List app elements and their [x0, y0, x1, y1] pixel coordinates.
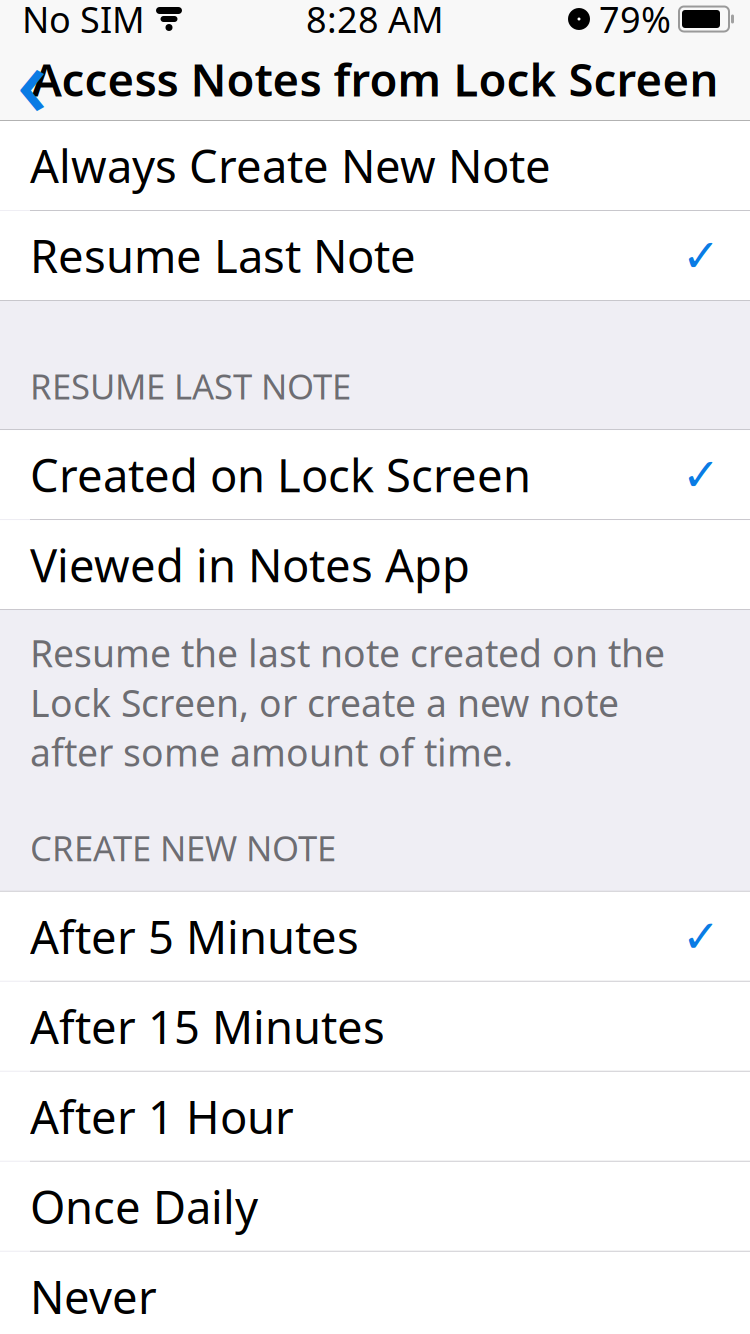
button[interactable]: Always Create New Note — [0, 121, 750, 210]
button[interactable]: Never — [0, 1252, 750, 1334]
staticText: ✓ — [682, 230, 720, 281]
button[interactable]: Back — [0, 37, 64, 120]
staticText: Resume the last note created on the Lock… — [30, 628, 665, 777]
staticText: 8:28 AM — [306, 0, 444, 43]
staticText: Once Daily — [30, 1176, 258, 1236]
button[interactable]: After 5 Minutes — [0, 892, 750, 981]
staticText: ✓ — [682, 449, 720, 500]
staticText: After 5 Minutes — [30, 906, 359, 966]
staticText: 79% — [599, 0, 671, 43]
staticText: Never — [30, 1266, 157, 1326]
staticText: CREATE NEW NOTE — [30, 825, 336, 871]
staticText: Access Notes from Lock Screen — [31, 49, 718, 109]
button[interactable]: Once Daily — [0, 1162, 750, 1251]
staticText: No SIM — [22, 0, 145, 43]
staticText: Always Create New Note — [30, 135, 551, 196]
button[interactable]: Created on Lock Screen — [0, 430, 750, 519]
button[interactable]: After 15 Minutes — [0, 982, 750, 1071]
staticText: After 1 Hour — [30, 1086, 294, 1146]
staticText: After 15 Minutes — [30, 996, 385, 1056]
button[interactable]: Viewed in Notes App — [0, 520, 750, 609]
button[interactable]: After 1 Hour — [0, 1072, 750, 1161]
staticText: ‹ — [16, 15, 47, 143]
staticText: Resume Last Note — [30, 225, 416, 286]
staticText: ✓ — [682, 911, 720, 962]
staticText: RESUME LAST NOTE — [30, 363, 351, 409]
staticText: Created on Lock Screen — [30, 444, 531, 505]
button[interactable]: Resume Last Note — [0, 211, 750, 300]
staticText: Viewed in Notes App — [30, 534, 470, 595]
